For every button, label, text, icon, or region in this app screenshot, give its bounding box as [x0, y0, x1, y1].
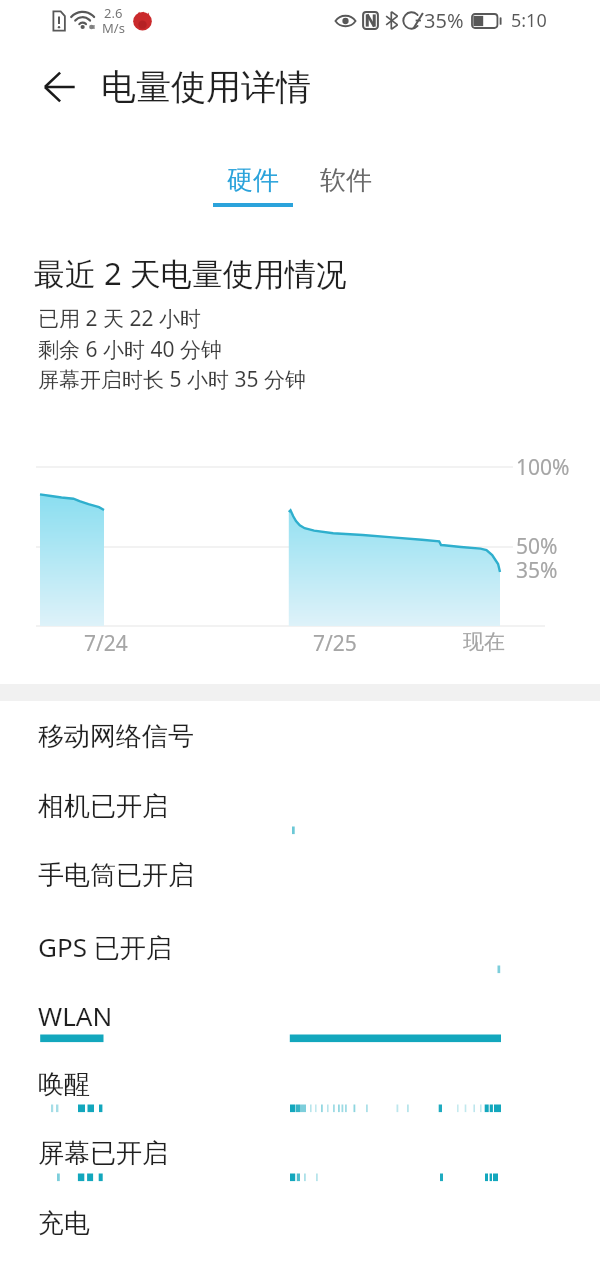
staticText: 已用 2 天 22 小时: [38, 304, 201, 333]
staticText: 手电筒已开启: [38, 859, 194, 892]
staticText: 相机已开启: [38, 790, 168, 823]
button[interactable]: 充电: [0, 1204, 600, 1267]
button[interactable]: 软件: [306, 164, 386, 197]
button[interactable]: GPS 已开启: [0, 926, 600, 995]
staticText: 最近 2 天电量使用情况: [34, 252, 347, 294]
staticText: WLAN: [38, 998, 113, 1033]
button[interactable]: 硬件: [213, 164, 293, 207]
staticText: 移动网络信号: [38, 720, 194, 753]
button[interactable]: 唤醒: [0, 1065, 600, 1134]
staticText: 5:10: [511, 8, 547, 33]
staticText: 软件: [320, 164, 372, 197]
staticText: 屏幕已开启: [38, 1137, 168, 1170]
button[interactable]: 手电筒已开启: [0, 856, 600, 925]
staticText: 硬件: [227, 164, 279, 197]
staticText: 100%: [516, 453, 570, 482]
staticText: 35%: [424, 7, 464, 34]
staticText: 屏幕开启时长 5 小时 35 分钟: [38, 365, 306, 394]
staticText: 7/24: [84, 629, 128, 658]
staticText: 35%: [516, 556, 558, 585]
button[interactable]: 移动网络信号: [0, 717, 600, 786]
button[interactable]: 屏幕已开启: [0, 1134, 600, 1203]
staticText: 2.6: [104, 4, 123, 22]
staticText: GPS 已开启: [38, 929, 172, 965]
staticText: 7/25: [313, 629, 357, 658]
staticText: 50%: [516, 532, 558, 561]
staticText: M/s: [102, 19, 125, 37]
staticText: 唤醒: [38, 1068, 90, 1101]
staticText: 现在: [463, 629, 505, 655]
staticText: 剩余 6 小时 40 分钟: [38, 335, 222, 364]
button[interactable]: WLAN: [0, 995, 600, 1064]
button[interactable]: Back: [29, 57, 89, 117]
staticText: 电量使用详情: [101, 65, 311, 109]
staticText: 充电: [38, 1207, 90, 1240]
button[interactable]: 相机已开启: [0, 787, 600, 856]
